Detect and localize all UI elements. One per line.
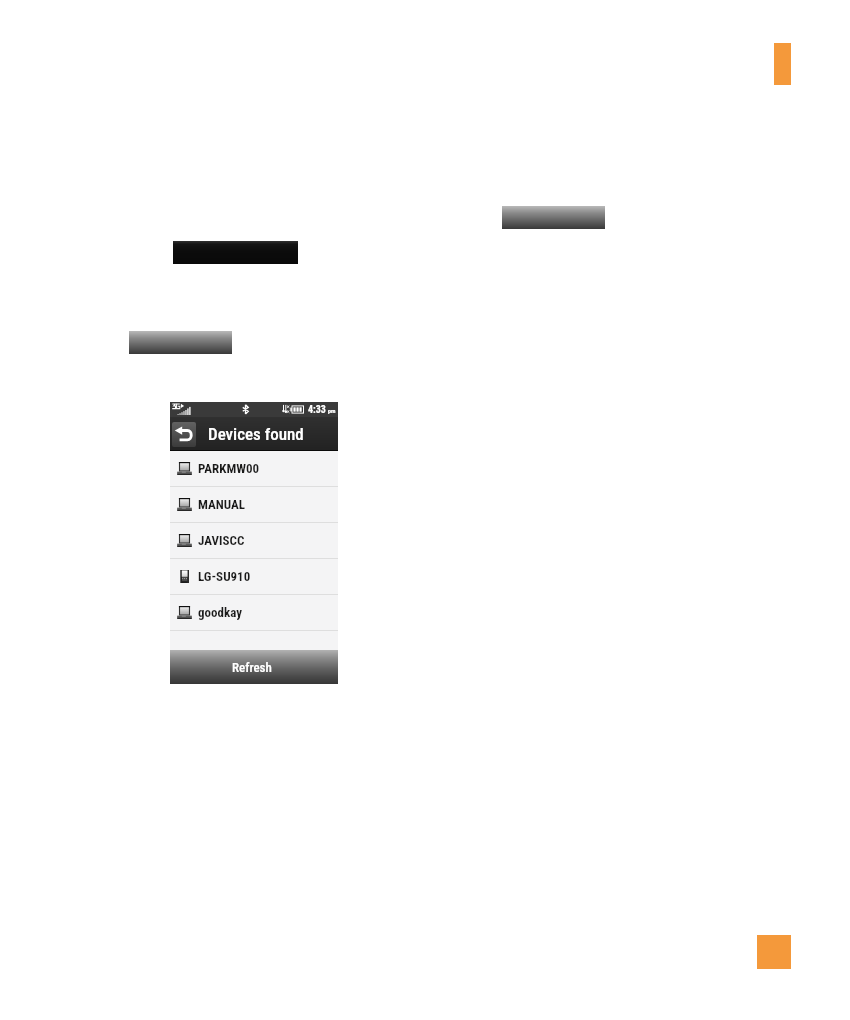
staticText: PARKMW00 xyxy=(198,461,260,476)
staticText: MANUAL xyxy=(198,497,245,512)
button[interactable]: PARKMW00 xyxy=(170,451,338,486)
staticText: JAVISCC xyxy=(198,533,245,548)
staticText: pm xyxy=(328,407,336,414)
button[interactable]: Back xyxy=(172,422,196,447)
button[interactable]: Refresh xyxy=(170,650,338,684)
button[interactable]: LG-SU910 xyxy=(170,559,338,594)
staticText: 4:33 xyxy=(308,404,326,416)
button[interactable]: MANUAL xyxy=(170,487,338,522)
staticText: Devices found xyxy=(208,424,304,444)
staticText: Refresh xyxy=(232,660,272,675)
button[interactable]: goodkay xyxy=(170,595,338,630)
button[interactable]: JAVISCC xyxy=(170,523,338,558)
staticText: goodkay xyxy=(198,605,242,620)
staticText: LG-SU910 xyxy=(198,569,251,584)
